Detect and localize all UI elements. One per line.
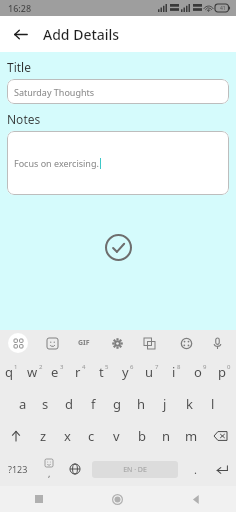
staticText: 8 — [177, 363, 181, 371]
staticText: h — [137, 395, 146, 413]
button[interactable]: h — [129, 388, 153, 420]
button[interactable]: Home — [78, 486, 157, 512]
button[interactable]: t — [92, 356, 116, 388]
button[interactable]: p — [212, 356, 236, 388]
button[interactable]: Settings — [107, 333, 127, 353]
button[interactable]: j — [153, 388, 177, 420]
button[interactable]: z — [31, 420, 55, 452]
staticText: p — [218, 363, 226, 381]
button[interactable]: g — [105, 388, 129, 420]
button[interactable]: k — [177, 388, 201, 420]
button[interactable]: u — [140, 356, 164, 388]
button[interactable]: Keyboard modes — [8, 333, 28, 353]
staticText: 0 — [227, 363, 231, 371]
button[interactable]: d — [57, 388, 81, 420]
staticText: Focus on exercising. — [14, 157, 99, 169]
button[interactable]: Voice input — [207, 333, 227, 353]
button[interactable]: n — [154, 420, 179, 452]
button[interactable]: Emoji and comma — [36, 452, 62, 486]
button[interactable]: EN · DE — [92, 461, 178, 478]
staticText: k — [186, 395, 193, 413]
button[interactable]: Icon — [42, 333, 62, 353]
button[interactable]: e — [46, 356, 69, 388]
staticText: u — [145, 363, 154, 381]
button[interactable]: Change language — [62, 452, 88, 486]
staticText: b — [138, 427, 146, 445]
button[interactable]: Translate — [139, 333, 159, 353]
button[interactable]: y — [116, 356, 140, 388]
staticText: 7 — [155, 363, 159, 371]
button[interactable]: . — [182, 452, 208, 486]
button[interactable]: m — [179, 420, 204, 452]
staticText: , — [48, 467, 51, 479]
staticText: z — [40, 427, 47, 445]
staticText: 2 — [39, 363, 43, 371]
staticText: t — [99, 363, 104, 381]
staticText: c — [88, 427, 95, 445]
button[interactable]: f — [81, 388, 105, 420]
staticText: 9 — [203, 363, 207, 371]
staticText: EN · DE — [123, 465, 147, 475]
button[interactable]: b — [129, 420, 154, 452]
staticText: e — [51, 363, 59, 381]
staticText: 6 — [130, 363, 134, 371]
button[interactable]: GIF — [74, 333, 94, 353]
button[interactable]: Recent apps — [0, 486, 78, 512]
button[interactable]: Back — [157, 486, 236, 512]
button[interactable]: Backspace — [204, 420, 236, 452]
staticText: GIF — [78, 338, 90, 348]
staticText: i — [172, 363, 176, 381]
staticText: Title — [7, 59, 31, 75]
button[interactable]: w — [23, 356, 46, 388]
staticText: Notes — [7, 111, 41, 127]
button[interactable]: o — [188, 356, 212, 388]
button[interactable]: i — [164, 356, 188, 388]
staticText: x — [64, 427, 71, 445]
staticText: 1 — [14, 363, 18, 371]
staticText: 4 — [82, 363, 86, 371]
button[interactable]: l — [201, 388, 225, 420]
button[interactable]: r — [69, 356, 92, 388]
staticText: r — [75, 363, 81, 381]
button[interactable]: Shift — [0, 420, 31, 452]
staticText: . — [194, 462, 197, 477]
staticText: 16:28 — [8, 2, 32, 14]
button[interactable]: x — [55, 420, 79, 452]
button[interactable]: Enter — [208, 452, 236, 486]
staticText: w — [27, 363, 38, 381]
staticText: 3 — [60, 363, 64, 371]
staticText: a — [19, 395, 27, 413]
button[interactable]: Saturday Thoughts — [7, 79, 229, 104]
button[interactable]: Focus on exercising. — [7, 131, 229, 195]
staticText: l — [211, 395, 215, 413]
staticText: d — [65, 395, 73, 413]
button[interactable]: a — [11, 388, 34, 420]
staticText: y — [122, 363, 129, 381]
staticText: g — [113, 395, 121, 413]
staticText: Saturday Thoughts — [14, 86, 95, 98]
staticText: q — [5, 363, 13, 381]
button[interactable]: ?123 — [0, 452, 36, 486]
staticText: f — [91, 395, 96, 413]
button[interactable]: Back — [4, 18, 36, 50]
staticText: 41 — [220, 5, 226, 12]
button[interactable]: c — [79, 420, 104, 452]
button[interactable]: Themes — [176, 333, 196, 353]
staticText: m — [185, 427, 198, 445]
button[interactable]: q — [0, 356, 23, 388]
staticText: 5 — [105, 363, 109, 371]
staticText: j — [163, 395, 167, 413]
button[interactable]: v — [104, 420, 129, 452]
staticText: s — [42, 395, 49, 413]
staticText: o — [194, 363, 202, 381]
staticText: Add Details — [43, 25, 120, 44]
button[interactable]: Save — [103, 232, 133, 262]
staticText: n — [162, 427, 171, 445]
staticText: v — [113, 427, 120, 445]
staticText: ?123 — [8, 463, 28, 475]
button[interactable]: s — [34, 388, 57, 420]
